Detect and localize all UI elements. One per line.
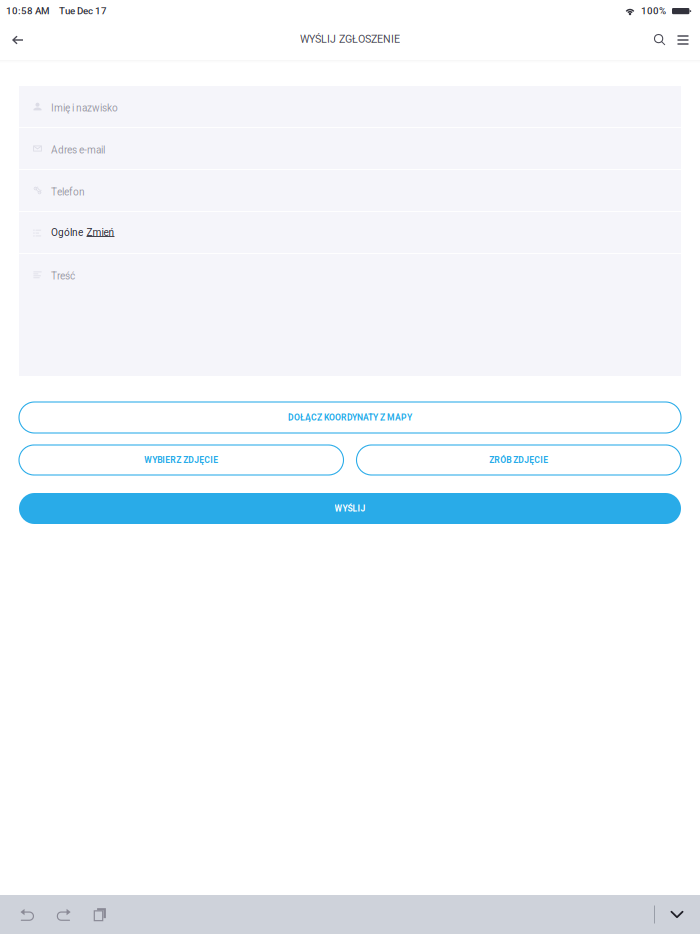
staticText: Zmień <box>86 227 114 238</box>
button[interactable]: Imię i nazwisko <box>19 86 681 127</box>
button[interactable]: Menu <box>672 23 694 57</box>
staticText: 10:58 AM <box>6 5 50 17</box>
button[interactable]: Treść <box>19 254 681 295</box>
button[interactable]: Undo <box>11 899 45 929</box>
staticText: WYBIERZ ZDJĘCIE <box>144 455 218 465</box>
button[interactable]: WYBIERZ ZDJĘCIE <box>19 445 343 475</box>
staticText: WYŚLIJ <box>334 503 365 514</box>
button[interactable]: Search <box>649 23 671 57</box>
button[interactable]: Back <box>0 22 35 58</box>
staticText: 100% <box>641 5 666 17</box>
button[interactable]: Ogólne <box>19 212 681 253</box>
button[interactable]: Adres e-mail <box>19 128 681 169</box>
staticText: Telefon <box>51 186 85 198</box>
staticText: DOŁĄCZ KOORDYNATY Z MAPY <box>288 412 412 423</box>
button[interactable]: Paste <box>83 899 117 929</box>
button[interactable]: DOŁĄCZ KOORDYNATY Z MAPY <box>19 402 681 433</box>
staticText: ZRÓB ZDJĘCIE <box>489 455 548 465</box>
button[interactable]: Redo <box>47 899 81 929</box>
button[interactable]: ZRÓB ZDJĘCIE <box>356 445 681 475</box>
staticText: Imię i nazwisko <box>51 102 118 114</box>
button[interactable]: Telefon <box>19 170 681 211</box>
staticText: Ogólne <box>51 227 83 238</box>
staticText: Tue Dec 17 <box>59 5 107 17</box>
staticText: Adres e-mail <box>51 144 105 156</box>
staticText: WYŚLIJ ZGŁOSZENIE <box>300 33 400 45</box>
button[interactable]: WYŚLIJ <box>19 493 681 524</box>
button[interactable]: Hide keyboard <box>662 899 692 929</box>
staticText: Treść <box>51 270 75 282</box>
